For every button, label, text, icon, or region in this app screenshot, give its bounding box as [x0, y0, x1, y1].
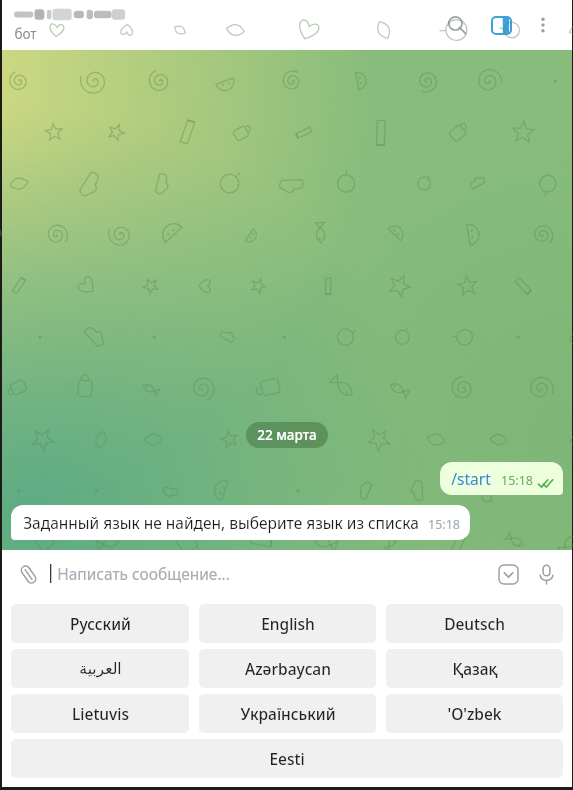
staticText: Azərbaycan [245, 658, 331, 679]
staticText: English [261, 613, 315, 634]
staticText: 15:18 [501, 472, 533, 489]
button[interactable]: Lietuvis [11, 694, 189, 733]
button[interactable]: Eesti [11, 739, 563, 778]
staticText: /start [451, 468, 491, 489]
button[interactable]: Заданный язык не найден, выберите язык и… [11, 505, 470, 540]
button[interactable]: Қазақ [386, 649, 563, 688]
staticText: Қазақ [452, 658, 498, 679]
button[interactable]: العربية [11, 649, 189, 688]
button[interactable]: More options [524, 6, 562, 44]
button[interactable]: Написать сообщение... [50, 550, 490, 597]
button[interactable]: Український [199, 694, 376, 733]
staticText: 15:18 [428, 516, 460, 533]
staticText: бот [14, 25, 37, 43]
staticText: Український [240, 703, 336, 724]
button[interactable]: 'O'zbek [386, 694, 563, 733]
button[interactable]: Deutsch [386, 604, 563, 643]
button[interactable]: Emoji and stickers [490, 556, 526, 592]
staticText: العربية [79, 660, 122, 678]
staticText: 22 марта [257, 426, 317, 444]
button[interactable]: English [199, 604, 376, 643]
staticText: Русский [70, 613, 131, 634]
button[interactable]: Search [438, 6, 476, 44]
button[interactable]: Azərbaycan [199, 649, 376, 688]
staticText: 'O'zbek [447, 703, 502, 724]
staticText: Заданный язык не найден, выберите язык и… [23, 512, 419, 533]
staticText: Написать сообщение... [57, 563, 230, 584]
staticText: Deutsch [444, 613, 505, 634]
button[interactable]: Русский [11, 604, 189, 643]
staticText: Lietuvis [72, 703, 129, 724]
button[interactable]: Record voice message [528, 556, 564, 592]
button[interactable]: Toggle side panel [482, 6, 520, 44]
staticText: Eesti [269, 748, 305, 769]
button[interactable]: /start [440, 462, 563, 495]
button[interactable]: Attach file [10, 556, 46, 592]
